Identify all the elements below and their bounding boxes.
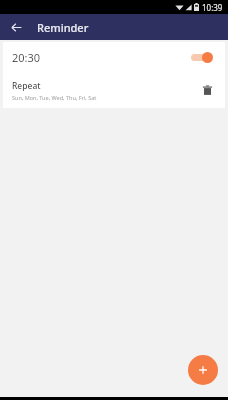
button[interactable]: Add reminder <box>188 355 218 385</box>
button[interactable]: 20:30 <box>3 42 225 72</box>
button[interactable]: Repeat <box>3 72 225 108</box>
staticText: 20:30 <box>12 50 41 65</box>
button[interactable]: Delete <box>197 80 217 100</box>
button[interactable]: Back <box>5 16 27 38</box>
staticText: 10:39 <box>202 2 223 13</box>
staticText: Sun, Mon, Tue, Wed, Thu, Fri, Sat <box>12 94 97 101</box>
staticText: Repeat <box>12 80 41 92</box>
staticText: Reminder <box>37 20 89 35</box>
button[interactable]: Toggle alarm <box>190 49 216 65</box>
